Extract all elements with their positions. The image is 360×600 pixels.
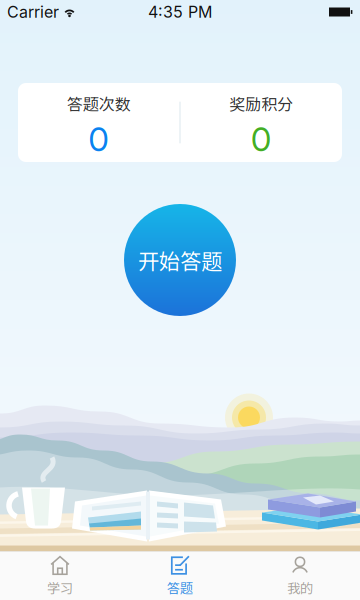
staticText: 我的: [287, 578, 313, 597]
staticText: 答题: [167, 578, 193, 597]
staticText: 答题次数: [67, 92, 131, 115]
staticText: 奖励积分: [229, 92, 293, 115]
button[interactable]: 答题: [120, 552, 240, 600]
staticText: 开始答题: [138, 245, 222, 275]
button[interactable]: 开始答题: [124, 204, 236, 316]
staticText: Carrier: [7, 2, 59, 22]
staticText: 0: [88, 119, 109, 159]
staticText: 0: [251, 119, 272, 159]
button[interactable]: 我的: [240, 552, 360, 600]
staticText: 4:35 PM: [148, 2, 212, 22]
staticText: 学习: [47, 578, 73, 597]
button[interactable]: 学习: [0, 552, 120, 600]
